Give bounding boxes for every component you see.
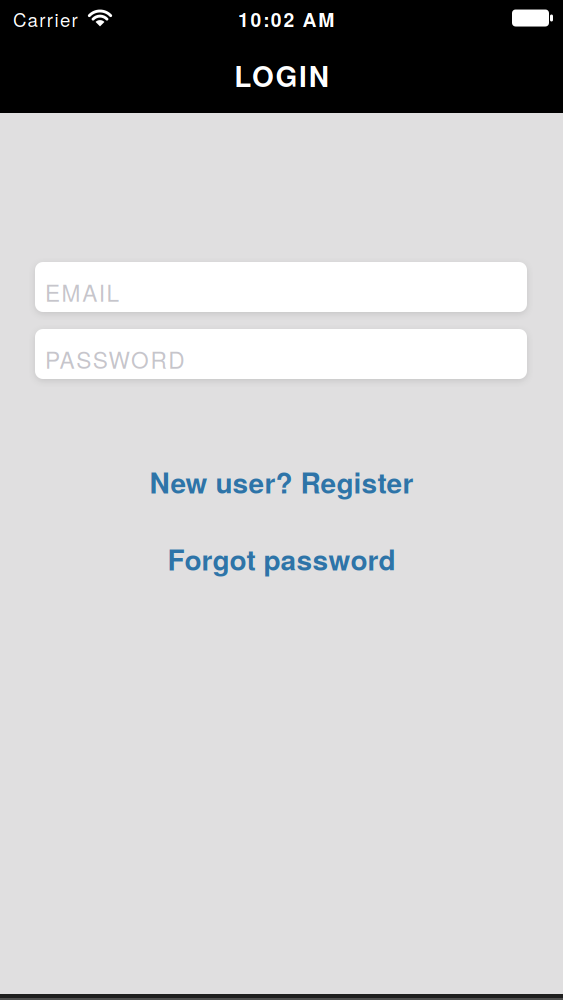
staticText: LOGIN <box>234 55 329 96</box>
textField[interactable]: EMAIL <box>35 262 527 312</box>
textField[interactable]: PASSWORD <box>35 329 527 379</box>
staticText: Carrier <box>13 6 78 32</box>
staticText: Forgot password <box>167 539 395 579</box>
button[interactable]: Forgot password <box>167 539 395 579</box>
staticText: New user? Register <box>149 462 413 502</box>
staticText: 10:02 AM <box>238 5 334 33</box>
button[interactable]: New user? Register <box>149 462 413 502</box>
staticText: PASSWORD <box>45 343 184 375</box>
staticText: EMAIL <box>45 276 119 308</box>
